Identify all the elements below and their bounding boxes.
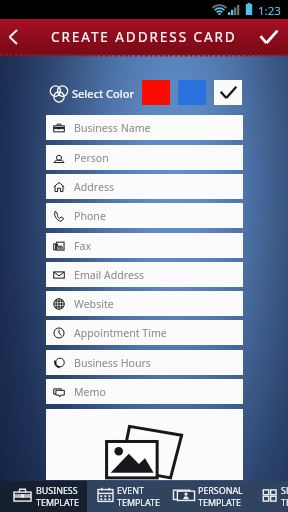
- staticText: PERSONAL: [198, 484, 243, 496]
- staticText: 1:23: [258, 3, 281, 19]
- staticText: Person: [74, 151, 109, 165]
- button[interactable]: BUSINESS TEMPLATE: [6, 481, 98, 512]
- staticText: Address: [74, 180, 115, 194]
- staticText: Fax: [74, 239, 92, 253]
- button[interactable]: Business Hours: [46, 350, 243, 375]
- staticText: TEMPLATE: [198, 496, 241, 508]
- staticText: Phone: [74, 209, 106, 223]
- button[interactable]: Phone: [46, 203, 243, 228]
- button[interactable]: Memo: [46, 379, 243, 404]
- staticText: BUSINESS: [36, 484, 78, 496]
- staticText: Business Name: [74, 121, 151, 135]
- staticText: EVENT: [117, 484, 144, 496]
- button[interactable]: Website: [46, 291, 243, 316]
- button[interactable]: EVENT TEMPLATE: [90, 481, 182, 512]
- button[interactable]: Email Address: [46, 262, 243, 287]
- button[interactable]: Address: [46, 174, 243, 199]
- button[interactable]: Business template: [0, 481, 87, 512]
- staticText: TEMPLATE: [117, 496, 160, 508]
- button[interactable]: PERSONAL TEMPLATE: [166, 481, 258, 512]
- staticText: Email Address: [74, 268, 145, 282]
- button[interactable]: Confirm colour: [214, 80, 242, 105]
- button[interactable]: Person: [46, 145, 243, 170]
- button[interactable]: Save: [250, 19, 288, 55]
- staticText: Memo: [74, 385, 106, 399]
- button[interactable]: Appointment Time: [46, 320, 243, 345]
- staticText: Website: [74, 297, 114, 311]
- staticText: TEMPLATE: [36, 496, 79, 508]
- button[interactable]: Back: [0, 19, 26, 55]
- staticText: CREATE ADDRESS CARD: [51, 28, 237, 46]
- button[interactable]: Business Name: [46, 115, 243, 140]
- staticText: Select Color: [72, 86, 135, 101]
- button[interactable]: Add photo: [46, 409, 243, 480]
- button[interactable]: Fax: [46, 233, 243, 258]
- button[interactable]: SHARE TEMPLATE: [255, 481, 288, 512]
- staticText: TEMPLATE: [281, 496, 288, 508]
- staticText: Business Hours: [74, 356, 151, 370]
- staticText: SHARE: [281, 484, 288, 496]
- staticText: Appointment Time: [74, 326, 167, 340]
